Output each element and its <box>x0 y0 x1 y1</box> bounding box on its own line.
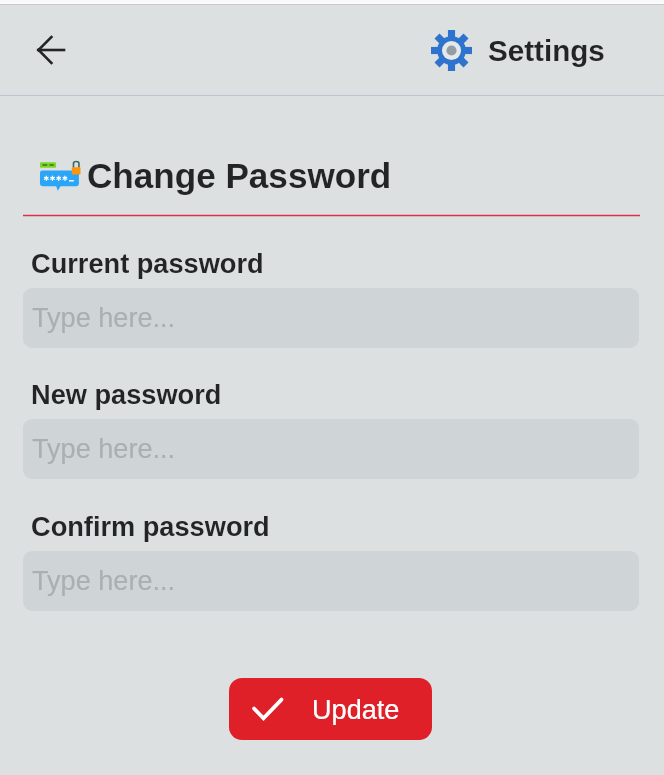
staticText: Current password <box>31 248 264 278</box>
button[interactable]: Type here... <box>23 551 639 611</box>
staticText: Type here... <box>32 433 176 463</box>
button[interactable]: Type here... <box>23 288 639 348</box>
staticText: New password <box>31 379 222 409</box>
staticText: Update <box>312 694 400 724</box>
staticText: Settings <box>488 34 605 67</box>
staticText: Change Password <box>87 156 392 195</box>
button[interactable]: Settings <box>431 26 605 74</box>
staticText: Type here... <box>32 565 176 595</box>
staticText: Confirm password <box>31 511 270 541</box>
staticText: Type here... <box>32 302 176 332</box>
button[interactable]: Back <box>22 22 78 78</box>
button[interactable]: Update <box>229 678 432 740</box>
button[interactable]: Type here... <box>23 419 639 479</box>
